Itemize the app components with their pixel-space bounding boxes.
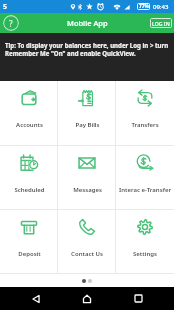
button[interactable]: Contact Us [58, 210, 116, 273]
staticText: 5 [3, 2, 8, 12]
button[interactable]: Home [72, 287, 102, 310]
staticText: Scheduled [14, 186, 45, 194]
staticText: Settings [133, 250, 157, 258]
button[interactable]: Recent apps [123, 287, 153, 310]
button[interactable]: Messages [58, 146, 116, 209]
staticText: Pay Bills [75, 121, 100, 129]
button[interactable]: Settings [116, 210, 174, 273]
staticText: Mobile App [67, 18, 108, 28]
staticText: Messages [73, 186, 102, 194]
staticText: Tip: To display your balances here, unde… [5, 41, 172, 58]
staticText: Interac e-Transfer [119, 186, 171, 194]
staticText: LOG IN [152, 20, 170, 27]
staticText: Transfers [131, 121, 159, 129]
button[interactable]: LOG IN [150, 18, 172, 28]
button[interactable]: Help [3, 15, 19, 31]
button[interactable]: Deposit [0, 210, 58, 273]
staticText: Deposit [18, 250, 41, 258]
staticText: ? [9, 18, 13, 29]
staticText: 09:43 [153, 3, 169, 11]
button[interactable]: Accounts [0, 81, 58, 145]
button[interactable]: Interac e-Transfer [116, 146, 174, 209]
button[interactable]: Pay Bills [58, 81, 116, 145]
button[interactable]: Scheduled [0, 146, 58, 209]
staticText: Contact Us [71, 250, 103, 258]
staticText: 77% [139, 3, 149, 10]
button[interactable]: Back [21, 287, 51, 310]
staticText: Accounts [16, 121, 43, 129]
button[interactable]: Transfers [116, 81, 174, 145]
